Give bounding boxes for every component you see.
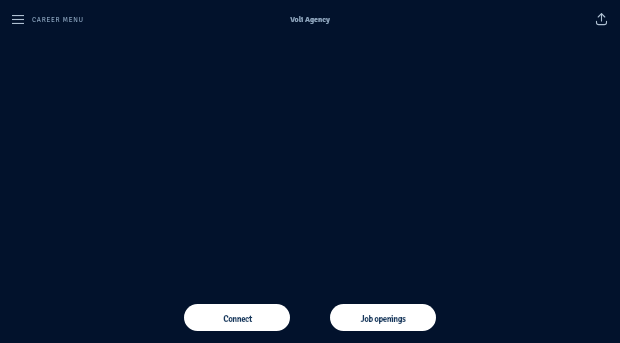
button[interactable]: Connect	[184, 304, 290, 331]
button[interactable]: Share	[590, 8, 612, 30]
staticText: CAREER MENU	[32, 16, 84, 24]
staticText: Connect	[223, 314, 252, 325]
staticText: Job openings	[360, 314, 406, 325]
button[interactable]: Job openings	[330, 304, 436, 331]
staticText: Voli Agency	[290, 15, 330, 25]
button[interactable]: CAREER MENU	[6, 9, 90, 30]
